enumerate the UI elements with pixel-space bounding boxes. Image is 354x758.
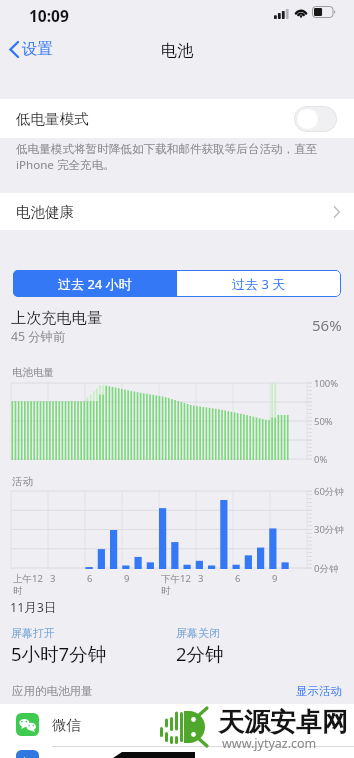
staticText: 上午12 时 bbox=[13, 572, 43, 596]
button[interactable]: 设置 bbox=[9, 36, 53, 62]
staticText: 知 bbox=[22, 755, 33, 758]
button[interactable]: 显示活动 bbox=[296, 684, 342, 698]
staticText: 60分钟 bbox=[314, 485, 344, 498]
staticText: 3 bbox=[50, 572, 56, 585]
staticText: 0% bbox=[314, 453, 328, 466]
staticText: 100% bbox=[314, 377, 339, 390]
staticText: 设置 bbox=[22, 39, 53, 59]
button[interactable]: 过去 3 天 bbox=[177, 270, 341, 297]
staticText: 屏幕关闭 bbox=[176, 626, 220, 640]
button[interactable]: Low Power Mode toggle bbox=[294, 106, 337, 132]
staticText: 50% bbox=[314, 415, 333, 428]
staticText: 30分钟 bbox=[314, 523, 344, 536]
staticText: 屏幕打开 bbox=[11, 626, 55, 640]
staticText: 6 bbox=[87, 572, 93, 585]
staticText: 上次充电电量 bbox=[11, 308, 103, 327]
staticText: 10:09 bbox=[29, 5, 69, 26]
staticText: 电池电量 bbox=[12, 366, 54, 379]
staticText: 微信 bbox=[52, 716, 81, 734]
staticText: 45 分钟前 bbox=[11, 328, 66, 345]
staticText: 低电量模式 bbox=[16, 110, 89, 128]
staticText: 3 bbox=[198, 572, 204, 585]
staticText: 电池 bbox=[161, 41, 193, 61]
staticText: 9 bbox=[272, 572, 278, 585]
staticText: 过去 24 小时 bbox=[58, 275, 132, 293]
staticText: 电池健康 bbox=[16, 203, 74, 221]
staticText: 6 bbox=[235, 572, 241, 585]
staticText: 显示活动 bbox=[296, 684, 342, 698]
staticText: 9 bbox=[124, 572, 130, 585]
staticText: 低电量模式将暂时降低如下载和邮件获取等后台活动，直至 iPhone 完全充电。 bbox=[16, 142, 318, 173]
staticText: 2分钟 bbox=[176, 641, 224, 666]
button[interactable]: 过去 24 小时 bbox=[13, 270, 177, 297]
staticText: 天源安卓网 bbox=[218, 706, 348, 739]
button[interactable]: 电池健康 bbox=[0, 193, 354, 230]
staticText: 下午12 时 bbox=[161, 572, 191, 596]
staticText: 5小时7分钟 bbox=[11, 641, 107, 666]
staticText: 应用的电池用量 bbox=[12, 684, 93, 698]
button[interactable]: 微信 bbox=[0, 704, 354, 746]
staticText: 11月3日 bbox=[10, 599, 57, 616]
staticText: 0分钟 bbox=[314, 562, 339, 575]
staticText: 56% bbox=[312, 315, 342, 335]
staticText: www.jytyaz.com bbox=[222, 735, 317, 752]
staticText: 活动 bbox=[12, 475, 33, 488]
staticText: 过去 3 天 bbox=[232, 275, 286, 293]
